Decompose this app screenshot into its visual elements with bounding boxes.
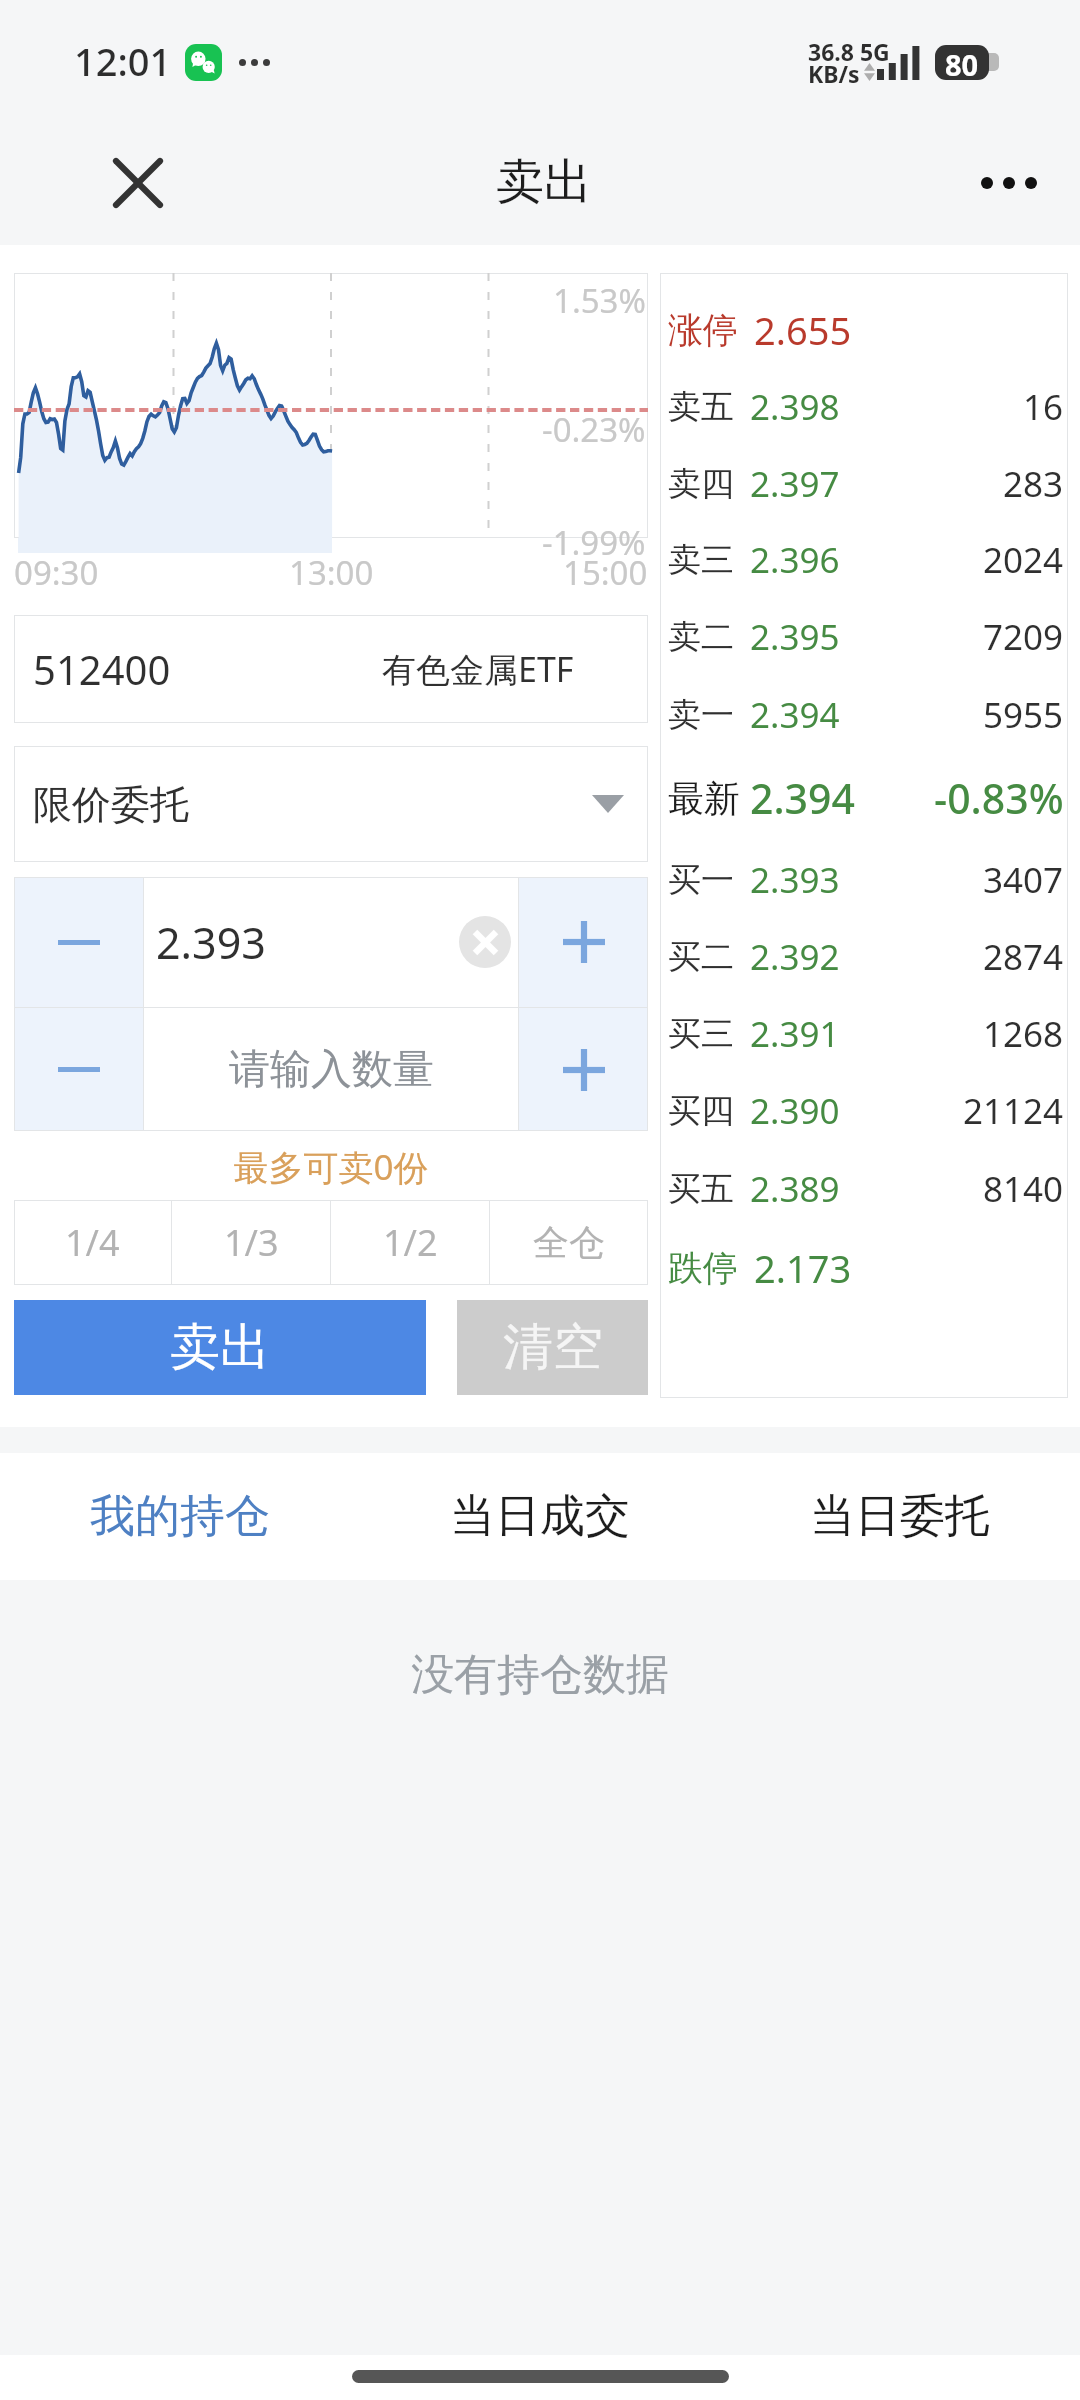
staticText: 最新 [668,776,740,821]
staticText: 36.8 5G [808,36,890,67]
button[interactable]: 当日成交 [360,1453,720,1580]
staticText: 2.394 [750,691,840,739]
staticText: 2.397 [750,460,840,508]
button[interactable]: Price chart [14,273,648,538]
staticText: 全仓 [533,1220,605,1265]
button[interactable]: 当日委托 [720,1453,1080,1580]
button[interactable]: Close [94,139,181,226]
button[interactable]: 买四 [668,1072,1064,1149]
staticText: 13:00 [289,550,374,595]
staticText: 7209 [983,613,1064,661]
staticText: 卖出 [496,152,592,212]
staticText: 2.398 [750,383,840,431]
staticText: 2.390 [750,1087,840,1135]
button[interactable]: 卖三 [668,522,1064,598]
staticText: -0.23% [542,407,646,452]
button[interactable]: 买二 [668,918,1064,995]
staticText: 买三 [668,1013,734,1055]
button[interactable]: 跌停 [668,1228,1064,1307]
staticText: 2.655 [754,304,852,356]
button[interactable]: 涨停 [668,291,1064,368]
staticText: 2.395 [750,613,840,661]
staticText: 限价委托 [33,780,189,829]
staticText: 2.394 [750,770,855,826]
staticText: 2.396 [750,536,840,584]
staticText: 1/3 [224,1218,279,1267]
button[interactable]: 2.393 [144,877,518,1007]
staticText: 2.393 [750,856,840,904]
staticText: 1.53% [553,278,646,323]
button[interactable]: 1/2 [331,1200,489,1285]
button[interactable]: 全仓 [490,1200,648,1285]
button[interactable]: 买五 [668,1149,1064,1228]
staticText: 2.393 [156,913,266,972]
button[interactable]: 买一 [668,841,1064,918]
staticText: 我的持仓 [90,1488,270,1545]
staticText: 1/4 [65,1218,120,1267]
button[interactable]: Decrease [14,877,143,1007]
staticText: 5955 [983,691,1064,739]
staticText: 2024 [983,536,1064,584]
staticText: 买一 [668,859,734,901]
staticText: 有色金属ETF [382,646,574,692]
staticText: 3407 [983,856,1064,904]
button[interactable]: 卖四 [668,446,1064,522]
button[interactable]: 买三 [668,995,1064,1072]
button[interactable]: 1/3 [172,1200,330,1285]
staticText: 买五 [668,1168,734,1210]
staticText: 21124 [963,1087,1064,1135]
staticText: 买二 [668,936,734,978]
staticText: 当日成交 [450,1488,630,1545]
staticText: 2.391 [750,1010,840,1058]
staticText: -1.99% [542,520,646,565]
staticText: 2.389 [750,1165,840,1213]
staticText: 卖二 [668,616,734,658]
staticText: KB/s [808,58,860,89]
button[interactable]: More options [963,139,1054,226]
staticText: 09:30 [14,550,99,595]
button[interactable]: 最新 [668,755,1064,841]
staticText: 2.392 [750,933,840,981]
button[interactable]: 512400 [14,615,648,723]
staticText: 2.173 [754,1242,852,1294]
button[interactable]: 请输入数量 [144,1008,518,1131]
staticText: -0.83% [934,770,1064,826]
staticText: 卖出 [170,1316,270,1379]
button[interactable]: 清空 [457,1300,648,1395]
staticText: 80 [945,45,979,80]
staticText: 1268 [983,1010,1064,1058]
staticText: 没有持仓数据 [411,1648,669,1702]
button[interactable]: 卖二 [668,598,1064,675]
staticText: 512400 [33,642,171,696]
button[interactable]: 卖一 [668,675,1064,755]
staticText: 卖四 [668,463,734,505]
staticText: 2874 [983,933,1064,981]
staticText: 15:00 [563,550,648,595]
button[interactable]: Decrease [14,1008,143,1131]
button[interactable]: Clear [459,916,511,968]
staticText: 12:01 [74,35,172,87]
staticText: 最多可卖0份 [14,1143,648,1191]
staticText: 卖三 [668,539,734,581]
staticText: 1/2 [383,1218,438,1267]
staticText: 请输入数量 [229,1044,434,1096]
staticText: 当日委托 [810,1488,990,1545]
staticText: 跌停 [668,1246,738,1290]
staticText: 卖一 [668,694,734,736]
staticText: 16 [1023,383,1064,431]
staticText: 清空 [503,1316,603,1379]
staticText: 卖五 [668,386,734,428]
staticText: 买四 [668,1090,734,1132]
button[interactable]: 1/4 [14,1200,171,1285]
staticText: 涨停 [668,308,738,352]
staticText: 8140 [983,1165,1064,1213]
button[interactable]: Increase [519,877,648,1007]
staticText: 283 [1003,460,1064,508]
button[interactable]: 卖出 [14,1300,426,1395]
button[interactable]: Increase [519,1008,648,1131]
button[interactable]: 限价委托 [14,746,648,862]
button[interactable]: 我的持仓 [0,1453,360,1580]
button[interactable]: 卖五 [668,368,1064,446]
